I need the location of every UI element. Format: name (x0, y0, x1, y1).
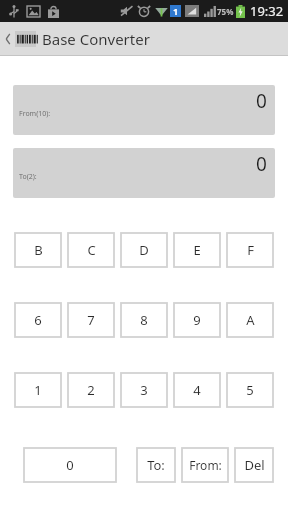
button[interactable]: To: (137, 448, 175, 482)
staticText: E (193, 241, 201, 259)
button[interactable]: Navigate up (0, 26, 40, 52)
button[interactable]: 7 (68, 303, 114, 337)
staticText: From(10): (19, 109, 51, 119)
button[interactable]: From(10): (13, 85, 275, 135)
button[interactable]: 6 (15, 303, 61, 337)
button[interactable]: 3 (121, 373, 167, 407)
button[interactable]: B (15, 233, 61, 267)
staticText: 75% (217, 6, 234, 17)
staticText: 0 (256, 151, 267, 177)
button[interactable]: From: (182, 448, 228, 482)
staticText: 8 (140, 311, 148, 329)
button[interactable]: E (174, 233, 220, 267)
staticText: B (34, 241, 43, 259)
staticText: 5 (246, 381, 254, 399)
staticText: 4 (193, 381, 201, 399)
staticText: 0 (256, 88, 267, 114)
staticText: 2 (87, 381, 95, 399)
staticText: From: (189, 457, 222, 473)
staticText: 9 (193, 311, 201, 329)
staticText: 6 (34, 311, 42, 329)
staticText: Base Converter (42, 29, 150, 49)
button[interactable]: 5 (227, 373, 273, 407)
staticText: Del (244, 456, 265, 474)
button[interactable]: F (227, 233, 273, 267)
staticText: 1 (173, 5, 179, 17)
staticText: 1 (34, 381, 42, 399)
button[interactable]: To(2): (13, 148, 275, 198)
button[interactable]: C (68, 233, 114, 267)
staticText: 3 (140, 381, 148, 399)
button[interactable]: A (227, 303, 273, 337)
staticText: A (246, 311, 255, 329)
button[interactable]: D (121, 233, 167, 267)
staticText: To(2): (19, 172, 37, 182)
staticText: 19:32 (250, 2, 284, 20)
button[interactable]: Del (235, 448, 273, 482)
staticText: D (139, 241, 149, 259)
button[interactable]: 4 (174, 373, 220, 407)
staticText: F (247, 241, 254, 259)
staticText: 0 (66, 456, 74, 474)
button[interactable]: 9 (174, 303, 220, 337)
button[interactable]: 0 (24, 448, 116, 482)
button[interactable]: 8 (121, 303, 167, 337)
staticText: To: (147, 456, 165, 474)
button[interactable]: 2 (68, 373, 114, 407)
staticText: C (87, 241, 96, 259)
staticText: 7 (87, 311, 95, 329)
button[interactable]: 1 (15, 373, 61, 407)
